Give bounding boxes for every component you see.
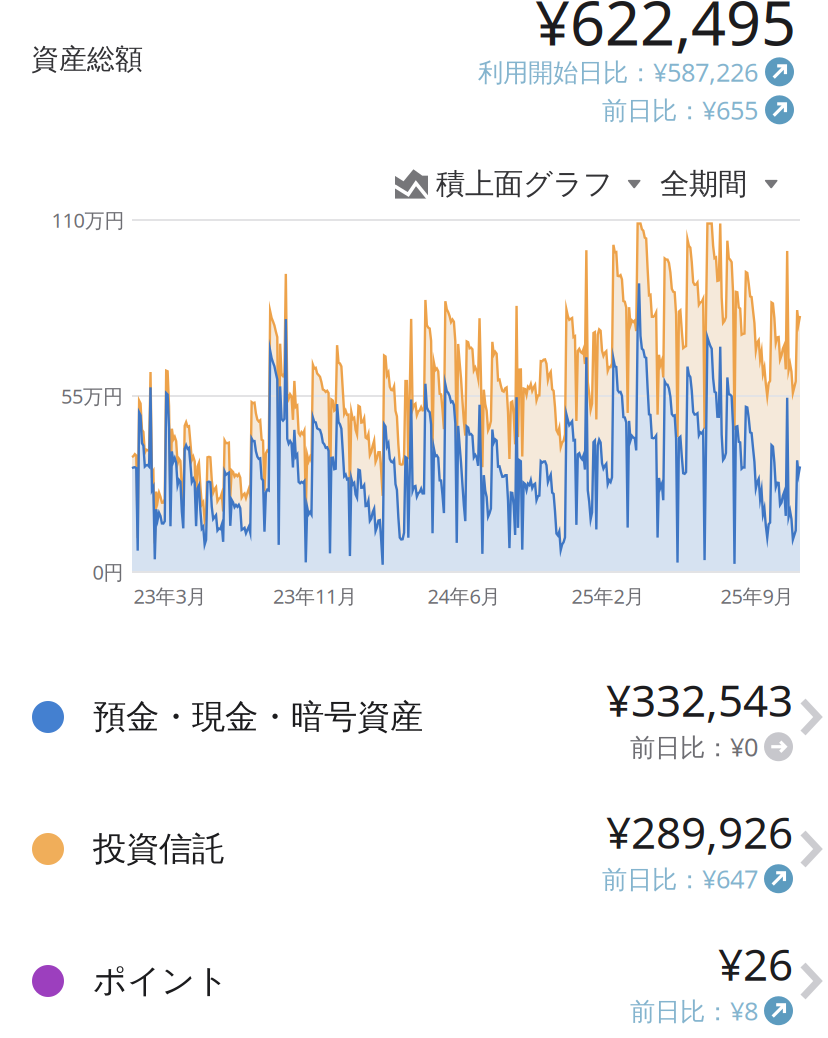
button[interactable]: 投資信託: [0, 783, 828, 915]
staticText: 0円: [92, 559, 123, 585]
staticText: 投資信託: [93, 828, 225, 869]
staticText: 積上面グラフ: [436, 166, 613, 202]
button[interactable]: 全期間: [660, 164, 790, 204]
staticText: 25年2月: [571, 583, 644, 609]
button[interactable]: 預金・現金・暗号資産: [0, 651, 828, 783]
staticText: 25年9月: [720, 583, 793, 609]
staticText: ¥26: [718, 934, 793, 993]
button[interactable]: ポイント: [0, 915, 828, 1038]
staticText: 全期間: [660, 166, 747, 202]
staticText: 23年11月: [273, 583, 357, 609]
staticText: 利用開始日比：¥587,226: [478, 55, 758, 89]
staticText: ¥332,543: [606, 670, 793, 729]
staticText: 55万円: [61, 383, 123, 409]
staticText: 前日比：¥0: [630, 730, 758, 763]
staticText: ¥289,926: [606, 802, 793, 861]
staticText: ポイント: [93, 960, 229, 1001]
staticText: 110万円: [51, 207, 124, 233]
staticText: 資産総額: [31, 42, 143, 76]
staticText: ¥622,495: [535, 0, 796, 62]
staticText: 24年6月: [427, 583, 500, 609]
button[interactable]: 積上面グラフ: [395, 164, 655, 204]
staticText: 前日比：¥655: [602, 93, 758, 127]
staticText: 前日比：¥8: [630, 994, 758, 1027]
staticText: 預金・現金・暗号資産: [93, 696, 423, 737]
staticText: 23年3月: [133, 583, 206, 609]
staticText: 前日比：¥647: [602, 862, 758, 895]
